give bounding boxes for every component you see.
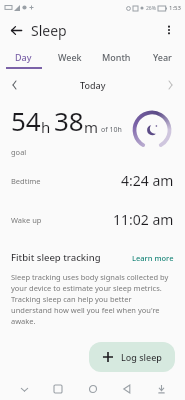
- staticText: 1:53: [169, 4, 181, 12]
- staticText: m: [84, 117, 99, 137]
- button[interactable]: Hide keyboard: [14, 379, 34, 399]
- button[interactable]: Home: [83, 379, 103, 399]
- staticText: Sleep: [31, 21, 67, 40]
- staticText: Learn more: [132, 253, 174, 263]
- button[interactable]: Log sleep: [89, 342, 175, 372]
- button[interactable]: Month: [93, 45, 139, 69]
- staticText: goal: [11, 147, 27, 157]
- staticText: Sleep tracking uses body signals collect…: [11, 272, 174, 326]
- staticText: 38: [54, 103, 84, 138]
- button[interactable]: Back: [4, 18, 28, 42]
- button[interactable]: More options: [157, 18, 181, 42]
- staticText: Month: [102, 51, 131, 63]
- staticText: h: [41, 117, 51, 137]
- button[interactable]: Bedtime: [0, 171, 185, 190]
- button[interactable]: Day: [0, 45, 47, 69]
- button[interactable]: Recent apps: [48, 379, 68, 399]
- staticText: Bedtime: [11, 176, 41, 186]
- staticText: Fitbit sleep tracking: [11, 251, 101, 264]
- staticText: Week: [58, 51, 82, 63]
- button[interactable]: Week: [47, 45, 93, 69]
- staticText: Wake up: [11, 215, 42, 225]
- staticText: Year: [153, 51, 172, 63]
- staticText: Today: [80, 79, 106, 91]
- staticText: 11:02 am: [113, 210, 174, 229]
- button[interactable]: Downloads: [151, 379, 171, 399]
- staticText: 26%: [146, 5, 156, 12]
- button[interactable]: Next day: [162, 77, 178, 93]
- staticText: 54: [11, 103, 41, 138]
- button[interactable]: Year: [139, 45, 185, 69]
- button[interactable]: Wake up: [0, 210, 185, 229]
- button[interactable]: Back: [117, 379, 137, 399]
- staticText: of 10h: [101, 125, 122, 135]
- staticText: 4:24 am: [121, 171, 174, 190]
- button[interactable]: Learn more: [132, 253, 174, 263]
- staticText: Log sleep: [121, 351, 162, 363]
- button[interactable]: Previous day: [7, 77, 23, 93]
- staticText: Day: [15, 51, 32, 63]
